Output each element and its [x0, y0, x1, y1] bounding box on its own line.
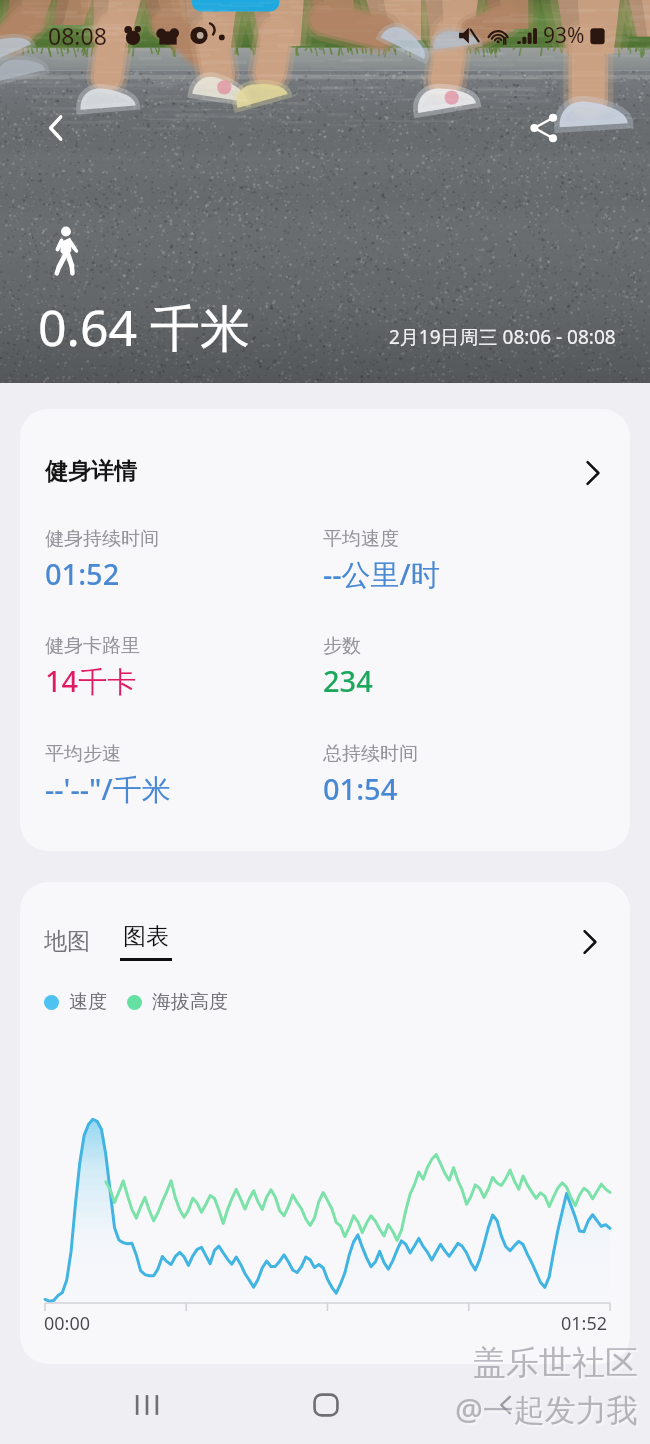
staticText: 08:08 [48, 20, 107, 51]
staticText: 01:54 [323, 769, 398, 808]
staticText: 平均速度 [323, 527, 399, 551]
staticText: 地图 [44, 927, 90, 956]
staticText: @一起发力我 [457, 1390, 640, 1432]
staticText: 0.64 千米 [38, 293, 251, 361]
staticText: 健身卡路里 [45, 634, 140, 658]
button[interactable]: Share [520, 104, 568, 152]
button[interactable]: Back [32, 104, 80, 152]
staticText: --'--"/千米 [45, 769, 171, 809]
staticText: 2月19日周三 08:06 - 08:08 [389, 324, 616, 350]
staticText: 平均步速 [45, 742, 121, 766]
button[interactable]: Back [434, 1366, 578, 1444]
button[interactable]: 图表 [120, 922, 172, 961]
staticText: @一起发力我 [455, 1388, 638, 1430]
staticText: 海拔高度 [152, 990, 228, 1014]
staticText: 健身详情 [45, 457, 137, 486]
staticText: 234 [323, 661, 373, 700]
staticText: 图表 [123, 922, 169, 951]
button[interactable]: Home [254, 1366, 398, 1444]
staticText: 盖乐世社区 [475, 1344, 640, 1386]
staticText: 盖乐世社区 [473, 1342, 638, 1384]
button[interactable]: Open chart [572, 924, 608, 960]
staticText: --公里/时 [323, 554, 440, 594]
staticText: 01:52 [45, 554, 120, 593]
staticText: 01:52 [561, 1311, 608, 1336]
staticText: 速度 [69, 990, 107, 1014]
staticText: 14千卡 [45, 661, 137, 701]
staticText: 总持续时间 [323, 742, 418, 766]
button[interactable]: 地图 [44, 923, 90, 960]
staticText: 健身持续时间 [45, 527, 159, 551]
staticText: 93% [543, 21, 585, 50]
button[interactable]: Recents [75, 1366, 219, 1444]
staticText: 步数 [323, 634, 361, 658]
staticText: 00:00 [44, 1311, 91, 1336]
button[interactable]: 健身详情 [20, 409, 630, 851]
